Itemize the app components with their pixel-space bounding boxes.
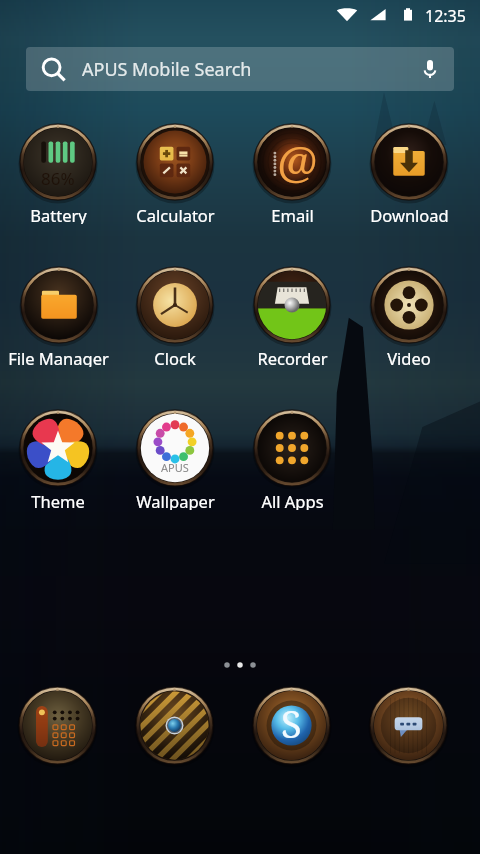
button[interactable]: Download (351, 122, 467, 222)
button[interactable]: APUS (117, 408, 233, 508)
staticText: Download (370, 204, 449, 224)
button[interactable]: Messages (360, 677, 456, 773)
staticText: Video (387, 347, 431, 367)
staticText: Battery (30, 204, 87, 224)
staticText: Calculator (136, 204, 215, 224)
staticText: All Apps (261, 490, 324, 510)
staticText: APUS (161, 460, 189, 475)
button[interactable]: Video (351, 265, 467, 365)
staticText: Theme (31, 490, 85, 510)
staticText: Wallpaper (136, 490, 215, 510)
staticText: Email (271, 204, 314, 224)
staticText: @ (277, 131, 318, 191)
button[interactable]: All Apps (234, 408, 350, 508)
button[interactable]: @ (234, 122, 350, 222)
button[interactable]: Calculator (117, 122, 233, 222)
other: Search (39, 55, 67, 83)
staticText: 12:35 (425, 5, 466, 27)
button[interactable]: Search (26, 47, 454, 91)
staticText: File Manager (8, 347, 109, 367)
staticText: S (281, 697, 302, 749)
button[interactable]: Camera (126, 677, 222, 773)
button[interactable]: Phone (9, 677, 105, 773)
button[interactable]: File Manager (0, 265, 116, 365)
button[interactable]: Theme (0, 408, 116, 508)
staticText: APUS Mobile Search (82, 57, 252, 82)
staticText: 86% (41, 167, 75, 190)
button[interactable]: 86% (0, 122, 116, 222)
button[interactable]: Voice search (409, 48, 451, 90)
button[interactable]: Clock (117, 265, 233, 365)
button[interactable]: Browser (243, 677, 339, 773)
staticText: Recorder (257, 347, 328, 367)
staticText: Clock (154, 347, 196, 367)
button[interactable]: Recorder (234, 265, 350, 365)
